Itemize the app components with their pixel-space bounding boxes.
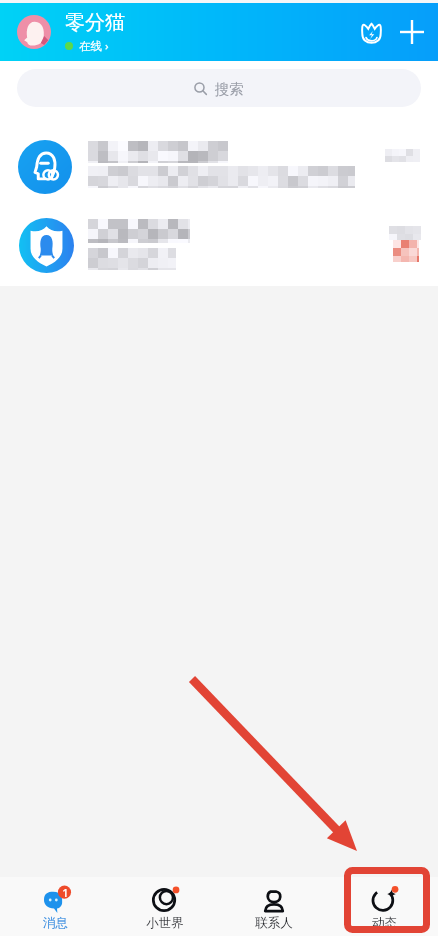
staticText: 在线 › <box>79 38 109 54</box>
staticText: 搜索 <box>207 78 244 98</box>
staticText: 消息 <box>43 915 68 931</box>
staticText: 1 <box>62 885 69 900</box>
button[interactable]: Pet <box>352 13 390 51</box>
button[interactable] <box>0 114 438 193</box>
button[interactable]: 1 <box>1 877 110 936</box>
staticText: 小世界 <box>146 915 184 931</box>
button[interactable]: Profile avatar <box>17 15 51 49</box>
button[interactable] <box>0 193 438 286</box>
staticText: 动态 <box>372 915 397 931</box>
button[interactable]: 联系人 <box>219 877 329 936</box>
staticText: 零分猫 <box>65 10 125 35</box>
staticText: 联系人 <box>255 915 293 931</box>
button[interactable]: 搜索 <box>17 69 421 107</box>
button[interactable]: Add <box>393 13 431 51</box>
button[interactable]: 小世界 <box>110 877 219 936</box>
button[interactable]: 动态 <box>329 877 438 936</box>
